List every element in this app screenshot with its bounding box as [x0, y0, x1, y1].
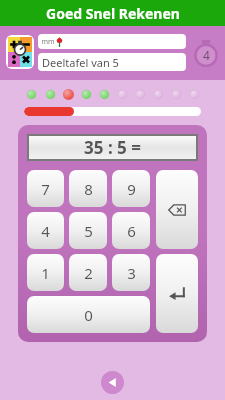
button[interactable]: Timer 4	[192, 38, 220, 68]
staticText: Deeltafel van 5	[42, 55, 119, 70]
button[interactable]: 4	[27, 212, 64, 249]
button[interactable]: Backspace	[156, 170, 198, 249]
button[interactable]: 0	[27, 296, 150, 333]
button[interactable]: Enter	[156, 254, 198, 333]
staticText: 6	[127, 221, 136, 241]
button[interactable]: Back	[101, 371, 124, 394]
button[interactable]: 7	[27, 170, 64, 207]
staticText: Goed Snel Rekenen	[46, 4, 180, 23]
staticText: 0	[84, 305, 93, 325]
staticText: 5	[84, 221, 93, 241]
button[interactable]: App icon	[6, 35, 34, 69]
staticText: 35 : 5 =	[84, 136, 141, 159]
staticText: 9	[127, 179, 136, 199]
button[interactable]: 6	[112, 212, 150, 249]
button[interactable]: 2	[69, 254, 107, 291]
staticText: 7	[41, 179, 50, 199]
staticText: 1	[41, 263, 50, 283]
staticText: 2	[84, 263, 93, 283]
button[interactable]: 8	[69, 170, 107, 207]
staticText: 3	[127, 263, 136, 283]
staticText: mm	[41, 37, 55, 47]
button[interactable]: Deeltafel van 5	[38, 53, 186, 71]
button[interactable]: 5	[69, 212, 107, 249]
button[interactable]: mm	[38, 34, 186, 49]
button[interactable]: 9	[112, 170, 150, 207]
staticText: 4	[41, 221, 50, 241]
staticText: 8	[84, 179, 93, 199]
button[interactable]: 3	[112, 254, 150, 291]
button[interactable]: 1	[27, 254, 64, 291]
staticText: 4	[203, 47, 210, 63]
